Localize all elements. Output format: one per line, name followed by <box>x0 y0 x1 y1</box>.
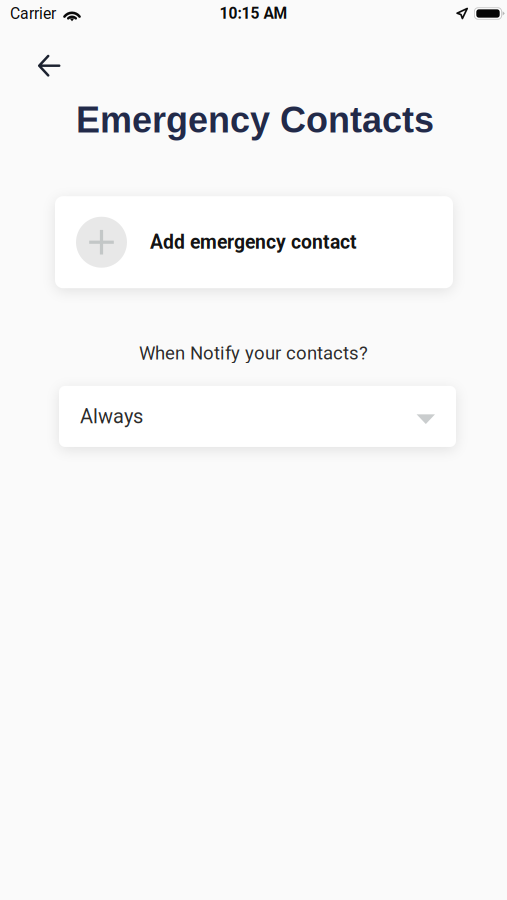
staticText: Emergency Contacts <box>76 100 434 140</box>
staticText: Carrier <box>10 4 56 23</box>
button[interactable]: Back <box>26 31 72 77</box>
staticText: Add emergency contact <box>150 231 357 254</box>
button[interactable]: Always <box>59 386 456 447</box>
staticText: 10:15 AM <box>219 4 287 23</box>
staticText: Always <box>80 405 143 428</box>
button[interactable]: Add emergency contact <box>55 196 453 288</box>
staticText: When Notify your contacts? <box>139 342 368 364</box>
